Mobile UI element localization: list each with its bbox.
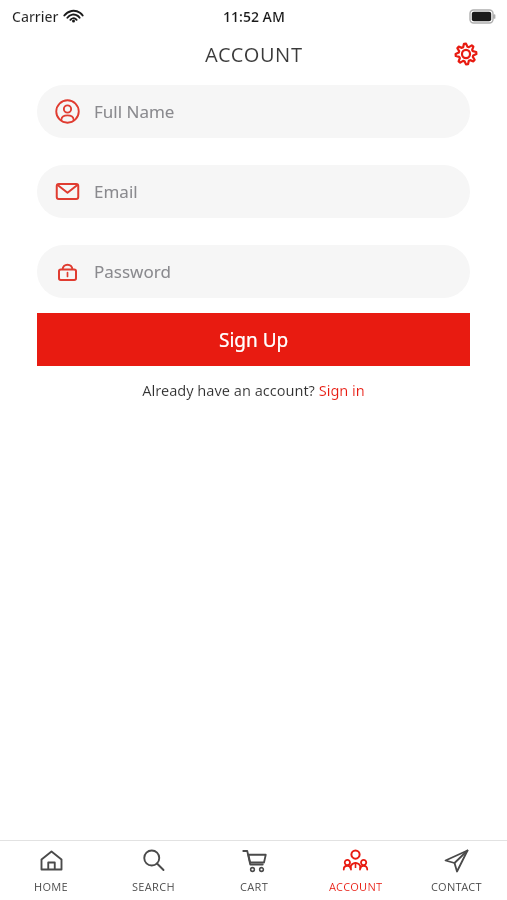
staticText: Email <box>94 180 138 203</box>
button[interactable]: Already have an account? Sign in <box>142 380 365 400</box>
staticText: CART <box>240 879 269 894</box>
staticText: SEARCH <box>132 879 175 894</box>
button[interactable]: Password <box>37 245 470 298</box>
staticText: CONTACT <box>431 879 483 894</box>
button[interactable]: Email <box>37 165 470 218</box>
staticText: ACCOUNT <box>329 879 383 894</box>
staticText: Full Name <box>94 100 175 123</box>
staticText: Password <box>94 260 171 283</box>
button[interactable]: HOME <box>0 841 102 900</box>
button[interactable]: SEARCH <box>102 841 204 900</box>
button[interactable]: Settings <box>450 38 482 70</box>
button[interactable]: CONTACT <box>406 841 507 900</box>
button[interactable]: CART <box>204 841 305 900</box>
staticText: HOME <box>34 879 69 894</box>
button[interactable]: Full Name <box>37 85 470 138</box>
button[interactable]: ACCOUNT <box>305 841 406 900</box>
staticText: Carrier <box>12 7 59 26</box>
staticText: Already have an account? Sign in <box>142 380 365 400</box>
staticText: 11:52 AM <box>223 7 285 26</box>
staticText: ACCOUNT <box>205 41 303 68</box>
staticText: Sign Up <box>219 327 289 353</box>
button[interactable]: Sign Up <box>37 313 470 366</box>
